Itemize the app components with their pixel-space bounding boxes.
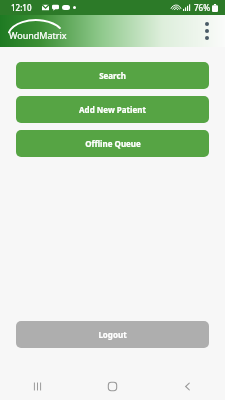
staticText: Logout [98, 329, 127, 340]
button[interactable]: Back [150, 372, 225, 400]
staticText: Add New Patient [79, 104, 146, 115]
staticText: Search [99, 70, 126, 81]
staticText: 12:10 [11, 2, 32, 13]
button[interactable]: Search [16, 62, 209, 89]
button[interactable]: Home [75, 372, 150, 400]
button[interactable]: Add New Patient [16, 96, 209, 123]
button[interactable]: More options [193, 17, 221, 45]
staticText: 76% [194, 2, 210, 13]
staticText: Offline Queue [85, 138, 141, 149]
staticText: WoundMatrix [9, 29, 67, 41]
button[interactable]: Offline Queue [16, 130, 209, 157]
button[interactable]: Recent apps [0, 372, 75, 400]
button[interactable]: Logout [16, 321, 209, 348]
